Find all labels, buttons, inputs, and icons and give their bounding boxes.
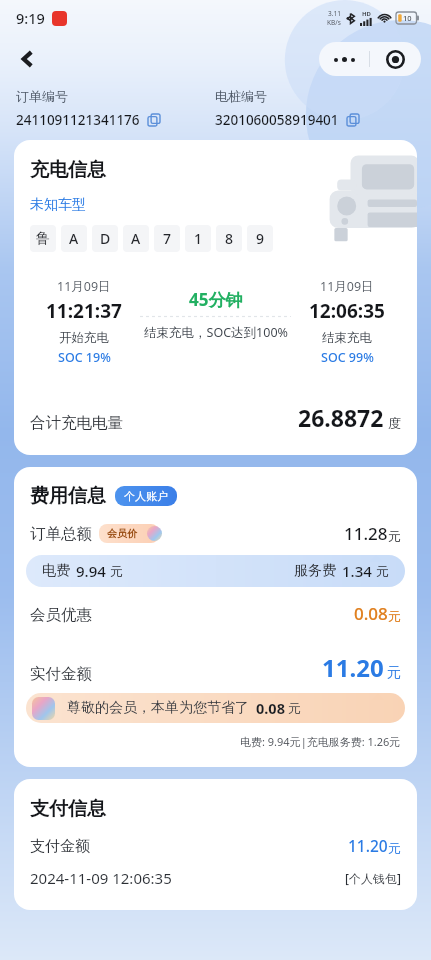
staticText: 电费: 9.94元|充电服务费: 1.26元 xyxy=(240,734,401,749)
button[interactable]: Back xyxy=(8,39,48,79)
staticText: 结束充电 xyxy=(322,330,372,346)
staticText: 支付信息 xyxy=(30,797,106,821)
staticText: 26.8872 xyxy=(298,402,384,433)
button[interactable]: More options xyxy=(319,42,369,76)
staticText: 11.20 xyxy=(322,651,384,684)
staticText: 元 xyxy=(388,608,401,624)
staticText: 元 xyxy=(388,528,401,544)
staticText: SOC 99% xyxy=(321,349,374,366)
staticText: 支付金额 xyxy=(30,837,90,856)
staticText: SOC 19% xyxy=(58,349,111,366)
staticText: 鲁 xyxy=(36,230,50,248)
staticText: 服务费 xyxy=(294,562,336,580)
staticText: 7 xyxy=(163,229,172,248)
staticText: 尊敬的会员，本单为您节省了 xyxy=(67,699,249,717)
staticText: 11月09日 xyxy=(57,278,111,295)
staticText: 11月09日 xyxy=(320,278,374,295)
staticText: 会员价 xyxy=(107,527,137,540)
staticText: 3201060058919401 xyxy=(215,111,339,129)
staticText: 12:06:35 xyxy=(309,298,385,324)
staticText: 元 xyxy=(110,563,123,579)
staticText: 订单编号 xyxy=(16,88,68,104)
staticText: 未知车型 xyxy=(30,196,86,214)
staticText: 3.11 xyxy=(328,9,341,18)
staticText: 0.08 xyxy=(256,698,285,718)
staticText: 10 xyxy=(403,13,412,23)
staticText: 1 xyxy=(194,229,203,248)
button[interactable]: Copy 电桩编号 xyxy=(344,111,362,129)
staticText: KB/s xyxy=(327,18,341,27)
staticText: 元 xyxy=(388,840,401,856)
staticText: 9:19 xyxy=(16,8,45,28)
staticText: A xyxy=(131,229,141,248)
staticText: 2411091121341176 xyxy=(16,111,140,129)
staticText: 开始充电 xyxy=(59,330,109,346)
staticText: 2024-11-09 12:06:35 xyxy=(30,868,172,888)
staticText: HD xyxy=(362,10,371,18)
staticText: 元 xyxy=(376,563,389,579)
button[interactable]: Copy 订单编号 xyxy=(145,111,163,129)
staticText: 度 xyxy=(388,415,401,431)
staticText: 45分钟 xyxy=(189,288,243,311)
staticText: 9.94 xyxy=(76,561,106,581)
staticText: 订单总额 xyxy=(30,524,92,544)
staticText: 0.08 xyxy=(354,602,388,625)
staticText: 会员优惠 xyxy=(30,605,92,625)
staticText: 合计充电电量 xyxy=(30,413,123,433)
staticText: 8 xyxy=(225,229,234,248)
staticText: 费用信息 xyxy=(30,484,106,508)
staticText: 元 xyxy=(387,664,401,682)
staticText: 结束充电，SOC达到100% xyxy=(144,324,288,341)
staticText: 实付金额 xyxy=(30,664,92,684)
staticText: 电桩编号 xyxy=(215,88,267,104)
staticText: D xyxy=(100,229,111,248)
staticText: 11.28 xyxy=(344,522,388,545)
staticText: 9 xyxy=(256,229,265,248)
staticText: 充电信息 xyxy=(30,158,106,182)
staticText: 电费 xyxy=(42,562,70,580)
staticText: 元 xyxy=(288,700,301,716)
staticText: 1.34 xyxy=(342,561,372,581)
staticText: [个人钱包] xyxy=(345,870,401,886)
staticText: A xyxy=(69,229,79,248)
staticText: 11.20 xyxy=(348,835,388,856)
staticText: 个人账户 xyxy=(124,489,168,503)
staticText: 11:21:37 xyxy=(46,298,122,324)
button[interactable]: Close xyxy=(370,42,421,76)
